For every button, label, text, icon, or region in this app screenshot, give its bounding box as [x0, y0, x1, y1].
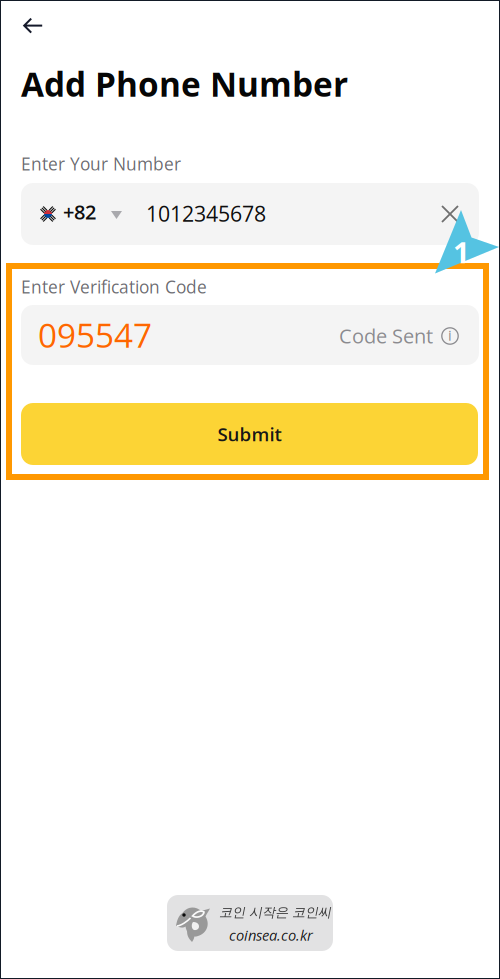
staticText: Code Sent — [339, 322, 433, 349]
staticText: 코인 시작은 코인씨 — [219, 904, 331, 921]
button[interactable]: Select country calling code — [21, 183, 129, 245]
staticText: i — [448, 325, 452, 345]
button[interactable]: Submit — [21, 403, 478, 465]
staticText: 1012345678 — [146, 199, 266, 228]
staticText: coinsea.co.kr — [229, 925, 313, 945]
button[interactable]: Back — [12, 6, 56, 46]
staticText: Enter Your Number — [21, 152, 181, 176]
staticText: +82 — [63, 198, 96, 225]
button[interactable]: Clear phone number — [429, 192, 473, 236]
staticText: 095547 — [38, 312, 152, 357]
staticText: Submit — [217, 421, 281, 447]
button[interactable]: Code Sent — [339, 313, 483, 357]
staticText: 1 — [453, 232, 470, 272]
staticText: Add Phone Number — [21, 61, 348, 106]
staticText: Enter Verification Code — [21, 275, 207, 299]
